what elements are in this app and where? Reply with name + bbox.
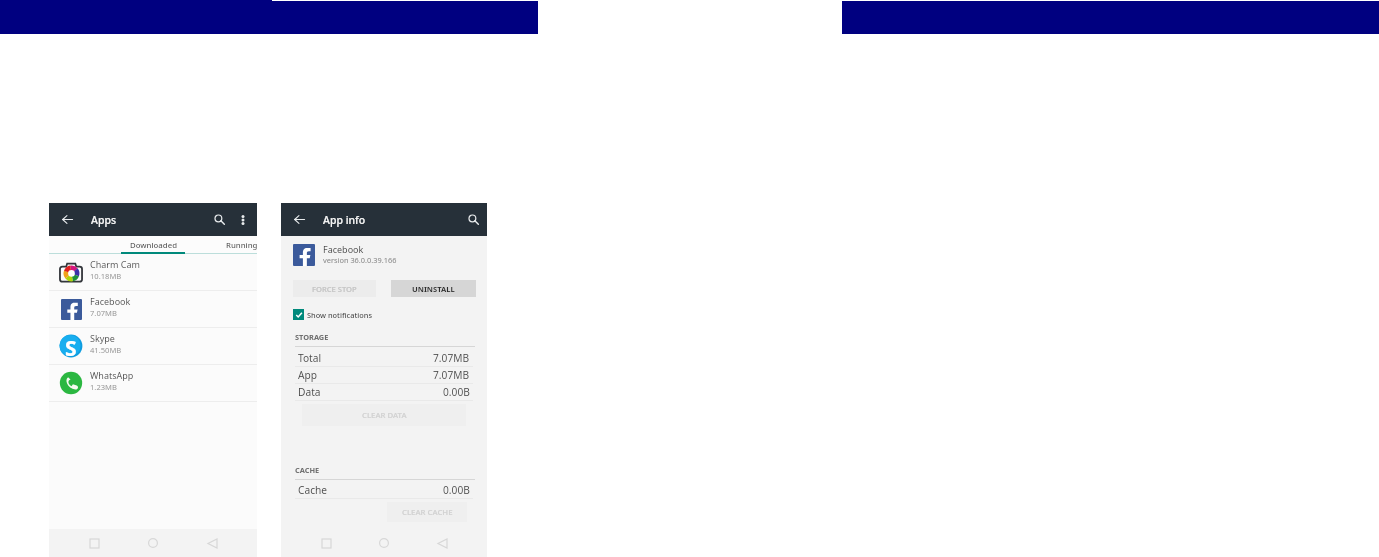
staticText: App <box>298 368 318 382</box>
button[interactable]: Cache <box>298 481 470 498</box>
button[interactable]: UNINSTALL <box>391 280 476 297</box>
staticText: Total <box>298 351 322 365</box>
staticText: version 36.0.0.39.166 <box>323 255 397 265</box>
button[interactable]: Charm Cam <box>49 254 257 290</box>
button[interactable]: Back <box>200 531 224 555</box>
button[interactable]: Home <box>141 531 165 555</box>
staticText: CLEAR CACHE <box>402 507 453 518</box>
button[interactable]: Recent apps <box>314 531 338 555</box>
staticText: FORCE STOP <box>312 284 357 294</box>
staticText: Facebook <box>323 243 364 255</box>
staticText: Running <box>226 240 257 251</box>
button[interactable]: CLEAR DATA <box>302 404 466 426</box>
staticText: UNINSTALL <box>412 284 455 294</box>
button[interactable]: Navigate up <box>287 203 311 236</box>
staticText: Skype <box>90 332 115 344</box>
button[interactable]: Total <box>298 349 470 366</box>
staticText: 7.07MB <box>433 351 470 365</box>
button[interactable]: Navigate up <box>55 203 79 236</box>
staticText: Downloaded <box>130 240 177 251</box>
staticText: Charm Cam <box>90 258 140 270</box>
staticText: 7.07MB <box>433 368 470 382</box>
staticText: 1.23MB <box>90 382 117 392</box>
staticText: 10.18MB <box>90 271 122 281</box>
button[interactable]: Search <box>461 203 485 236</box>
staticText: 0.00B <box>443 483 470 497</box>
staticText: App info <box>323 213 366 227</box>
button[interactable]: CLEAR CACHE <box>387 502 467 522</box>
button[interactable]: Show notifications <box>293 307 372 322</box>
button[interactable]: Search <box>206 203 232 236</box>
staticText: CACHE <box>295 465 320 475</box>
staticText: Show notifications <box>307 310 372 320</box>
staticText: Facebook <box>90 295 131 307</box>
button[interactable]: Back <box>430 531 454 555</box>
staticText: 7.07MB <box>90 308 117 318</box>
button[interactable]: Recent apps <box>82 531 106 555</box>
staticText: STORAGE <box>295 332 329 342</box>
staticText: S <box>65 334 77 358</box>
staticText: Apps <box>91 213 117 227</box>
button[interactable]: App <box>298 366 470 383</box>
button[interactable]: Facebook <box>49 291 257 327</box>
staticText: WhatsApp <box>90 369 134 381</box>
button[interactable]: S <box>49 328 257 364</box>
staticText: 0.00B <box>443 385 470 399</box>
staticText: Data <box>298 385 321 399</box>
button[interactable]: Data <box>298 383 470 400</box>
button[interactable]: More options <box>232 203 254 236</box>
staticText: CLEAR DATA <box>362 410 407 421</box>
button[interactable]: Home <box>372 531 396 555</box>
button[interactable]: FORCE STOP <box>293 280 376 297</box>
button[interactable]: WhatsApp <box>49 365 257 401</box>
button[interactable]: Running <box>226 236 257 254</box>
button[interactable]: Downloaded <box>121 236 185 254</box>
staticText: Cache <box>298 483 328 497</box>
staticText: 41.50MB <box>90 345 122 355</box>
